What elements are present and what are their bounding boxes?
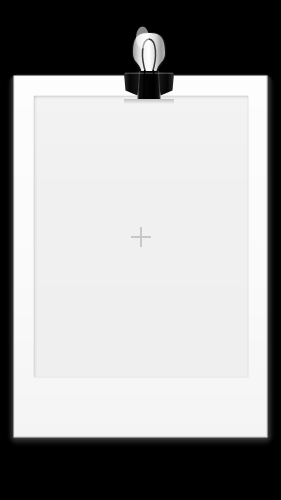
button[interactable]: Add photo [0, 0, 281, 500]
